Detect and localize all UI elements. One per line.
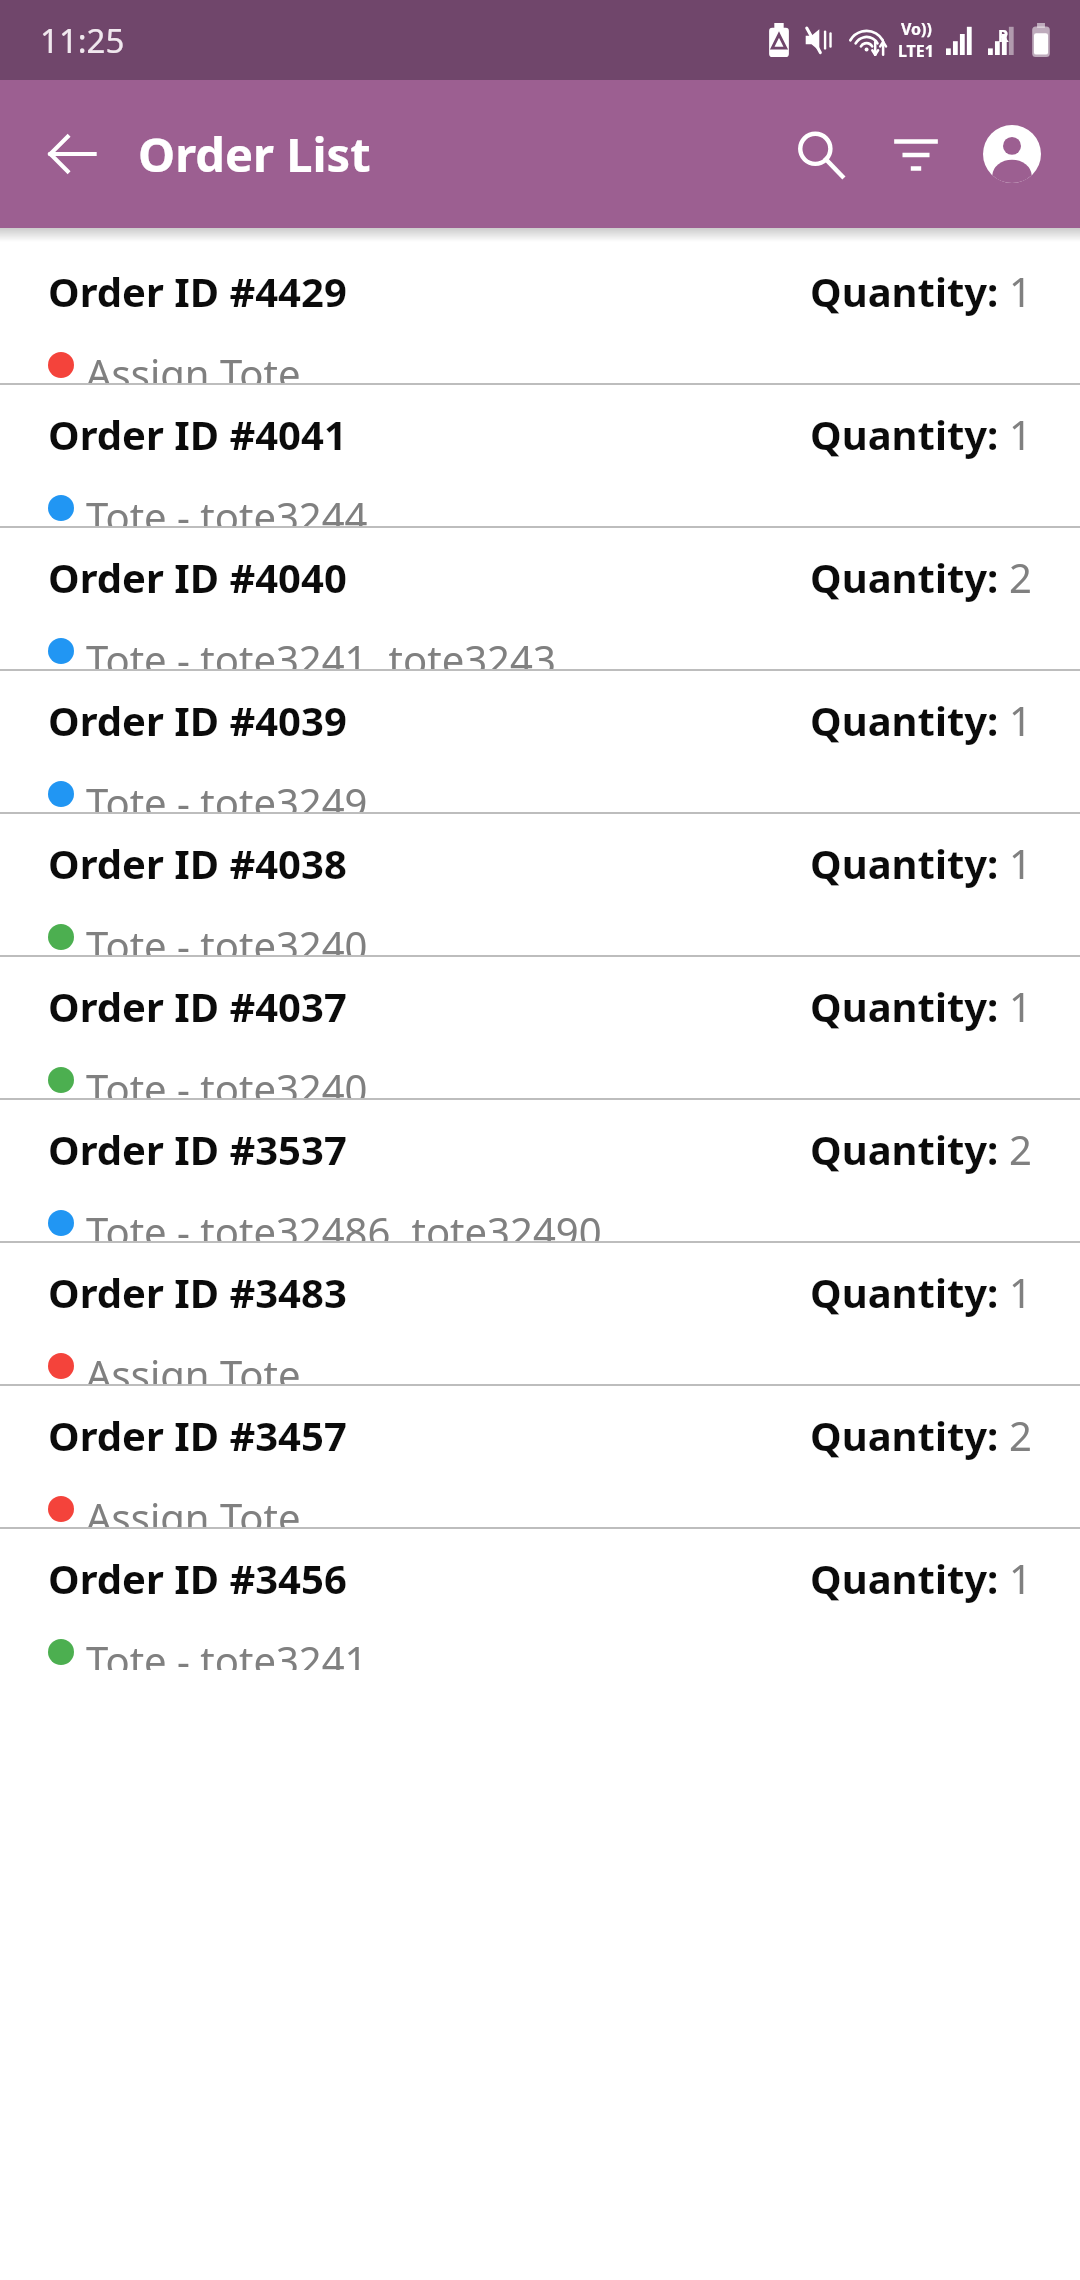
staticText: Tote - tote32486, tote32490 [86, 1204, 602, 1241]
staticText: Order ID #4041 [48, 407, 347, 461]
staticText: Vo)) [901, 18, 932, 40]
button[interactable]: Order ID #4041 [0, 385, 1080, 526]
staticText: Order ID #3483 [48, 1265, 347, 1319]
staticText: 1 [1009, 979, 1032, 1033]
staticText: Assign Tote [86, 1490, 301, 1527]
button[interactable]: Account [964, 106, 1060, 202]
staticText: Order ID #4037 [48, 979, 347, 1033]
staticText: Tote - tote3249 [86, 775, 368, 812]
button[interactable]: Filter [868, 106, 964, 202]
staticText: 1 [1009, 1265, 1032, 1319]
staticText: Order ID #4040 [48, 550, 347, 604]
staticText: Quantity: [810, 1122, 1009, 1176]
staticText: Order ID #4429 [48, 264, 347, 318]
staticText: Tote - tote3240 [86, 918, 368, 955]
button[interactable]: Order ID #3537 [0, 1100, 1080, 1241]
button[interactable]: Order ID #3456 [0, 1529, 1080, 1670]
staticText: Quantity: [810, 693, 1009, 747]
button[interactable]: Order ID #3483 [0, 1243, 1080, 1384]
button[interactable]: Order ID #4040 [0, 528, 1080, 669]
staticText: Quantity: [810, 1551, 1009, 1605]
staticText: Quantity: [810, 407, 1009, 461]
button[interactable]: Order ID #4429 [0, 242, 1080, 383]
staticText: 1 [1009, 693, 1032, 747]
staticText: Order ID #4038 [48, 836, 347, 890]
staticText: Tote - tote3241 [86, 1633, 368, 1670]
staticText: Order ID #3537 [48, 1122, 347, 1176]
button[interactable]: Back [20, 102, 124, 206]
staticText: Tote - tote3240 [86, 1061, 368, 1098]
button[interactable]: Order ID #4038 [0, 814, 1080, 955]
staticText: Quantity: [810, 979, 1009, 1033]
button[interactable]: Search [772, 106, 868, 202]
staticText: Assign Tote [86, 346, 301, 383]
staticText: 11:25 [40, 18, 125, 63]
staticText: Quantity: [810, 550, 1009, 604]
staticText: 2 [1009, 1408, 1032, 1462]
staticText: 1 [1009, 407, 1032, 461]
staticText: Order ID #3457 [48, 1408, 347, 1462]
button[interactable]: Order ID #4037 [0, 957, 1080, 1098]
staticText: 1 [1009, 264, 1032, 318]
button[interactable]: Order ID #4039 [0, 671, 1080, 812]
staticText: Assign Tote [86, 1347, 301, 1384]
staticText: Tote - tote3244 [86, 489, 368, 526]
button[interactable]: Order ID #3457 [0, 1386, 1080, 1527]
staticText: 1 [1009, 836, 1032, 890]
staticText: Tote - tote3241, tote3243 [86, 632, 556, 669]
staticText: Quantity: [810, 836, 1009, 890]
staticText: Order List [138, 122, 371, 186]
staticText: 2 [1009, 1122, 1032, 1176]
staticText: Order ID #3456 [48, 1551, 347, 1605]
staticText: Quantity: [810, 1408, 1009, 1462]
staticText: Quantity: [810, 1265, 1009, 1319]
staticText: LTE1 [898, 40, 934, 62]
staticText: R [998, 25, 1009, 47]
staticText: 1 [1009, 1551, 1032, 1605]
staticText: Quantity: [810, 264, 1009, 318]
staticText: 2 [1009, 550, 1032, 604]
staticText: Order ID #4039 [48, 693, 347, 747]
